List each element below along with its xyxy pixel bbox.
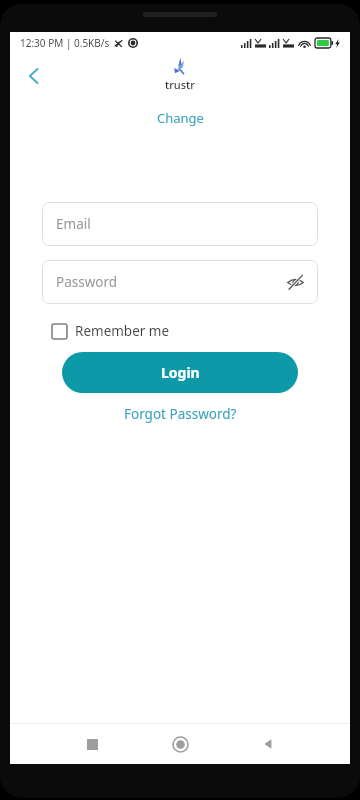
staticText: Forgot Password?: [124, 405, 237, 423]
button[interactable]: Login: [62, 352, 298, 393]
button[interactable]: Email: [42, 202, 318, 246]
button[interactable]: Remember me: [42, 318, 180, 344]
button[interactable]: Recents: [72, 724, 112, 764]
staticText: Password: [56, 273, 118, 291]
button[interactable]: Password: [42, 260, 318, 304]
button[interactable]: Back: [14, 56, 54, 96]
staticText: Login: [161, 363, 200, 382]
button[interactable]: Toggle password visibility: [280, 267, 310, 297]
button[interactable]: Back: [248, 724, 288, 764]
button[interactable]: Home: [160, 724, 200, 764]
staticText: 12:30 PM | 0.5KB/s: [20, 36, 110, 50]
button[interactable]: Change: [147, 106, 214, 130]
button[interactable]: Forgot Password?: [114, 402, 247, 426]
staticText: Change: [157, 109, 204, 127]
staticText: trustr: [165, 77, 195, 92]
staticText: Remember me: [75, 322, 170, 340]
staticText: Email: [56, 215, 91, 233]
